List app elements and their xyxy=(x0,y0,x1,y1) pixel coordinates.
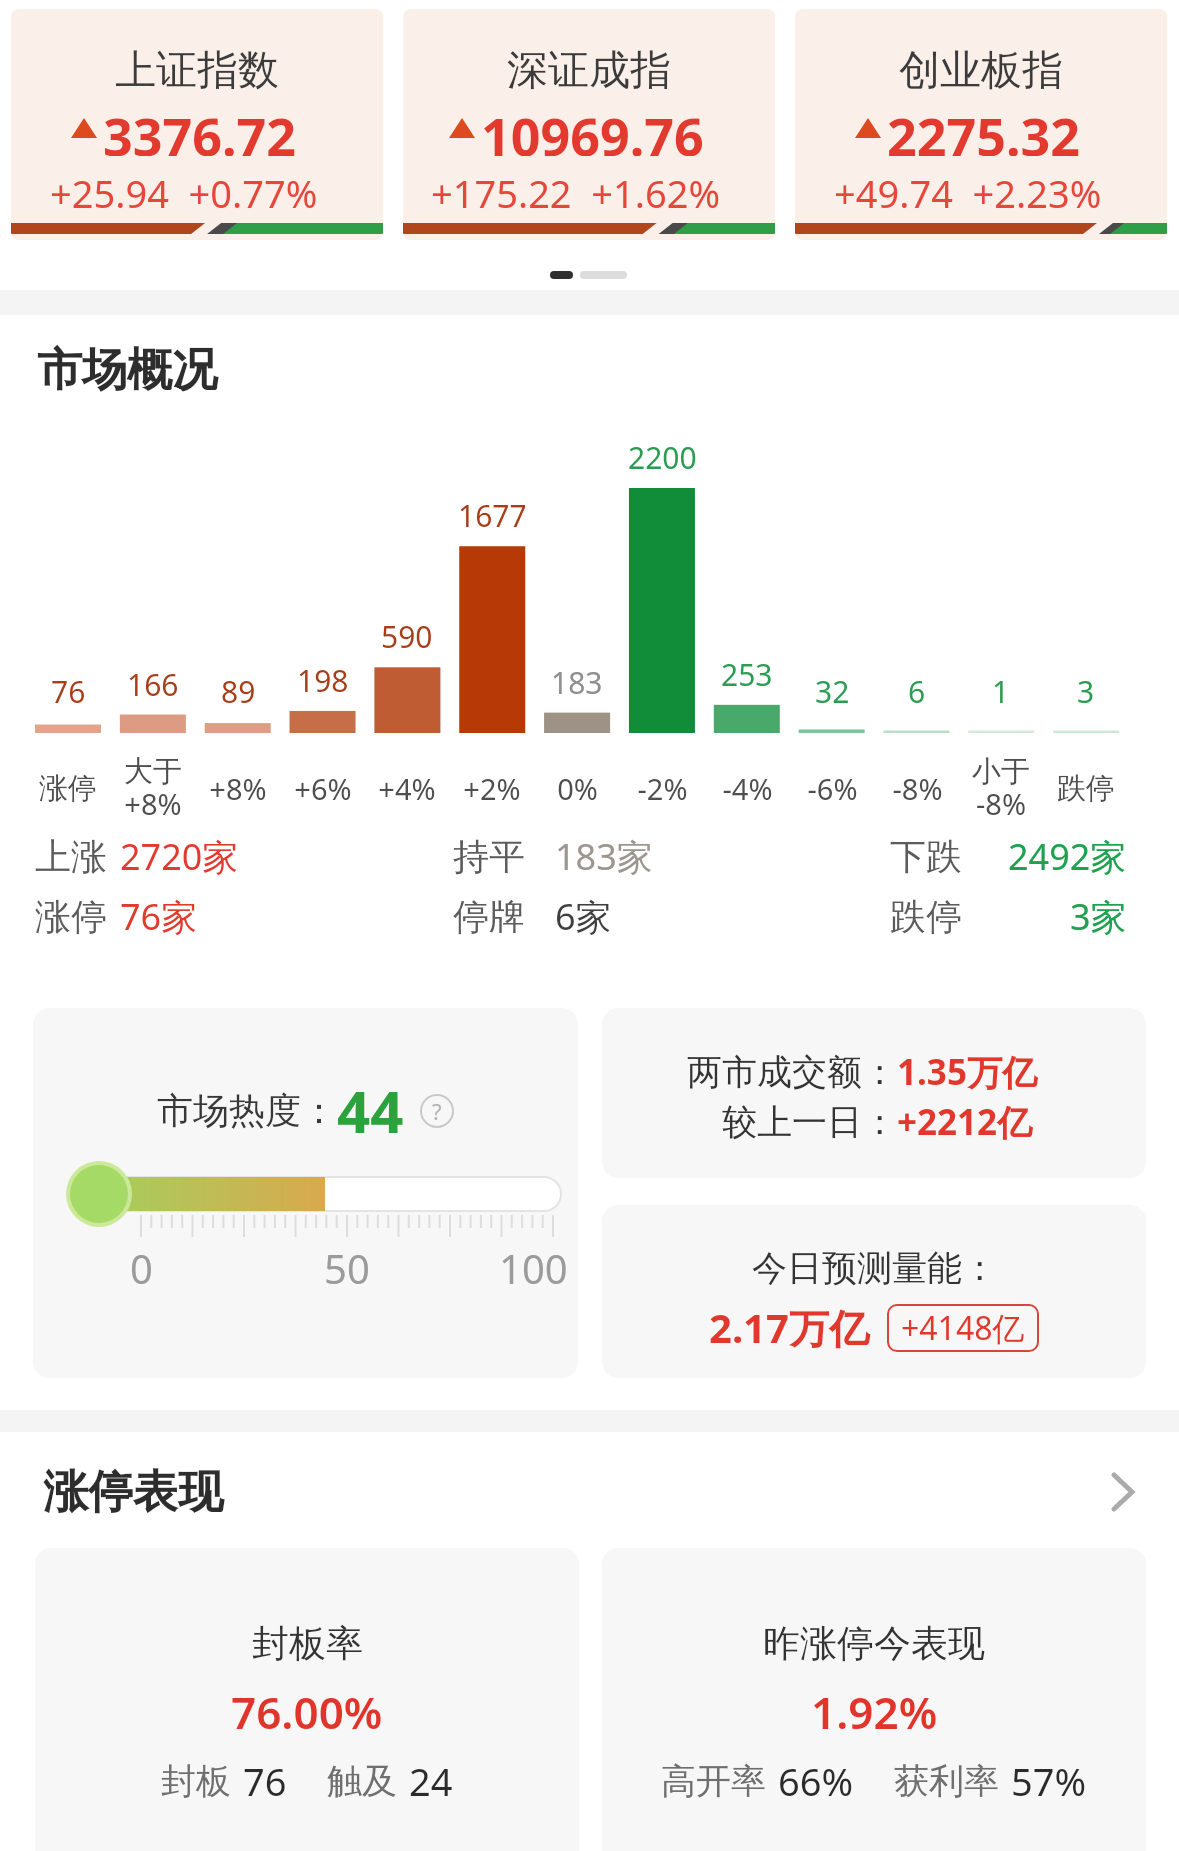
staticText: 183 xyxy=(551,662,603,703)
staticText: 2200 xyxy=(628,437,697,478)
staticText: 市场热度： xyxy=(157,1088,337,1133)
staticText: 32 xyxy=(815,671,850,712)
button[interactable]: 封板率 xyxy=(35,1548,579,1851)
staticText: 昨涨停今表现 xyxy=(763,1620,985,1667)
staticText: 1677 xyxy=(458,495,527,536)
staticText: 触及 xyxy=(327,1759,397,1803)
staticText: 590 xyxy=(381,616,433,657)
staticText: 下跌 xyxy=(890,834,962,879)
staticText: 两市成交额： xyxy=(687,1050,897,1094)
staticText: 6家 xyxy=(555,892,612,941)
button[interactable]: 两市成交额： xyxy=(602,1008,1146,1178)
button[interactable]: 创业板指 xyxy=(795,9,1167,240)
staticText: -8% xyxy=(892,769,943,808)
staticText: 涨停表现 xyxy=(43,1464,223,1521)
button[interactable]: 市场热度： xyxy=(33,1008,578,1378)
staticText: 涨停 xyxy=(39,770,97,807)
staticText: 小于 -8% xyxy=(972,753,1030,823)
staticText: 获利率 xyxy=(894,1759,999,1803)
staticText: 跌停 xyxy=(890,894,962,939)
staticText: 今日预测量能： xyxy=(752,1246,997,1290)
staticText: 2.17万亿 xyxy=(709,1300,869,1355)
staticText: +25.94 +0.77% xyxy=(50,167,318,219)
staticText: 3 xyxy=(1077,671,1095,712)
button[interactable]: 昨涨停今表现 xyxy=(602,1548,1146,1851)
staticText: 66% xyxy=(778,1755,854,1807)
staticText: +4% xyxy=(378,769,436,808)
staticText: 76家 xyxy=(120,892,198,941)
staticText: 76.00% xyxy=(231,1682,383,1738)
button[interactable]: 涨停表现 xyxy=(0,1460,1179,1524)
staticText: +175.22 +1.62% xyxy=(431,167,721,219)
staticText: 1.92% xyxy=(811,1682,938,1738)
staticText: +6% xyxy=(294,769,352,808)
staticText: -2% xyxy=(637,769,688,808)
staticText: 57% xyxy=(1011,1755,1087,1807)
staticText: 76 xyxy=(51,671,86,712)
staticText: 183家 xyxy=(555,832,653,881)
staticText: 市场概况 xyxy=(37,342,217,399)
staticText: 大于 +8% xyxy=(124,753,182,823)
staticText: 76 xyxy=(243,1755,287,1807)
staticText: 24 xyxy=(409,1755,453,1807)
staticText: 涨停 xyxy=(35,894,107,939)
staticText: 2492家 xyxy=(1008,832,1127,881)
staticText: 1.35万亿 xyxy=(897,1048,1037,1096)
staticText: 253 xyxy=(721,654,773,695)
staticText: 停牌 xyxy=(453,894,525,939)
staticText: 100 xyxy=(499,1241,568,1295)
staticText: 0% xyxy=(557,769,598,808)
staticText: 166 xyxy=(127,664,179,705)
staticText: -6% xyxy=(807,769,858,808)
staticText: +2% xyxy=(463,769,521,808)
staticText: 6 xyxy=(908,671,926,712)
staticText: 封板 xyxy=(161,1759,231,1803)
staticText: 3376.72 xyxy=(103,100,297,156)
staticText: 1 xyxy=(992,671,1010,712)
staticText: -4% xyxy=(722,769,773,808)
staticText: 持平 xyxy=(453,834,525,879)
staticText: 10969.76 xyxy=(481,100,704,156)
staticText: 198 xyxy=(297,660,349,701)
staticText: 2275.32 xyxy=(887,100,1081,156)
staticText: 高开率 xyxy=(661,1759,766,1803)
staticText: +8% xyxy=(209,769,267,808)
button[interactable]: 深证成指 xyxy=(403,9,775,240)
button[interactable]: ? xyxy=(420,1094,454,1128)
staticText: 上证指数 xyxy=(115,45,279,97)
staticText: 0 xyxy=(130,1241,153,1295)
button[interactable]: 今日预测量能： xyxy=(602,1205,1146,1378)
staticText: 深证成指 xyxy=(507,45,671,97)
staticText: +4148亿 xyxy=(901,1306,1025,1350)
staticText: 封板率 xyxy=(252,1620,363,1667)
staticText: 跌停 xyxy=(1057,770,1115,807)
staticText: 50 xyxy=(324,1241,370,1295)
staticText: 44 xyxy=(337,1071,404,1150)
staticText: 89 xyxy=(221,671,256,712)
staticText: 较上一日： xyxy=(722,1100,897,1144)
staticText: 3家 xyxy=(1070,892,1127,941)
staticText: +2212亿 xyxy=(897,1098,1033,1146)
staticText: +49.74 +2.23% xyxy=(834,167,1102,219)
staticText: 2720家 xyxy=(120,832,239,881)
staticText: 上涨 xyxy=(35,834,107,879)
staticText: 创业板指 xyxy=(899,45,1063,97)
staticText: ? xyxy=(432,1096,442,1126)
button[interactable]: 上证指数 xyxy=(11,9,383,240)
